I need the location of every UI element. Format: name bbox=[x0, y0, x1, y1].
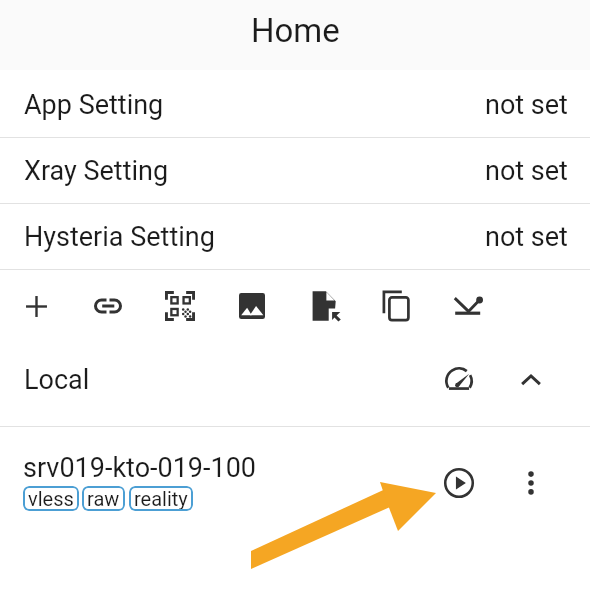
staticText: srv019-kto-019-100 bbox=[23, 452, 257, 484]
staticText: not set bbox=[485, 89, 568, 121]
staticText: Hysteria Setting bbox=[24, 221, 215, 253]
button[interactable]: Scan QR code bbox=[144, 270, 216, 342]
button[interactable]: Import from file bbox=[288, 270, 360, 342]
staticText: App Setting bbox=[24, 89, 164, 121]
button[interactable]: srv019-kto-019-100 bbox=[0, 427, 590, 539]
button[interactable]: Update subscriptions bbox=[432, 270, 504, 342]
button[interactable]: Collapse group bbox=[507, 356, 555, 404]
staticText: Xray Setting bbox=[24, 155, 169, 187]
staticText: raw bbox=[87, 487, 120, 510]
staticText: not set bbox=[485, 155, 568, 187]
staticText: not set bbox=[485, 221, 568, 253]
button[interactable]: Import from image bbox=[216, 270, 288, 342]
button[interactable]: Xray Setting bbox=[0, 138, 590, 203]
button[interactable]: Copy bbox=[360, 270, 432, 342]
button[interactable]: Local bbox=[0, 342, 590, 426]
button[interactable]: Test connection speed bbox=[435, 356, 483, 404]
button[interactable]: More options bbox=[507, 459, 555, 507]
button[interactable]: Add configuration bbox=[0, 270, 72, 342]
button[interactable]: Start connection bbox=[435, 459, 483, 507]
staticText: vless bbox=[28, 487, 74, 510]
button[interactable]: App Setting bbox=[0, 72, 590, 137]
button[interactable]: Import from clipboard link bbox=[72, 270, 144, 342]
button[interactable]: Hysteria Setting bbox=[0, 204, 590, 269]
staticText: reality bbox=[134, 487, 188, 510]
staticText: Home bbox=[251, 11, 340, 50]
staticText: Local bbox=[24, 364, 90, 396]
